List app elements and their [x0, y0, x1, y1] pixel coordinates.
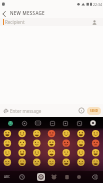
button[interactable] [43, 129, 58, 138]
button[interactable]: Recipient [0, 18, 103, 26]
button[interactable] [92, 20, 97, 25]
button[interactable] [6, 119, 14, 127]
button[interactable] [28, 138, 43, 147]
staticText: ABC [4, 175, 10, 179]
button[interactable] [14, 147, 28, 157]
button[interactable] [3, 108, 9, 114]
button[interactable]: NEW MESSAGE [0, 8, 103, 18]
staticText: Recipient [5, 19, 25, 25]
button[interactable] [62, 172, 72, 182]
button[interactable] [58, 157, 73, 167]
button[interactable]: Enter message [10, 108, 78, 114]
button[interactable] [88, 138, 103, 147]
button[interactable] [43, 138, 58, 147]
button[interactable] [61, 119, 69, 127]
button[interactable] [37, 173, 45, 181]
button[interactable]: SEND [87, 107, 101, 115]
button[interactable] [28, 147, 43, 157]
button[interactable] [73, 129, 88, 138]
button[interactable] [17, 172, 27, 182]
button[interactable] [0, 138, 14, 147]
button[interactable] [34, 119, 42, 127]
button[interactable] [58, 138, 73, 147]
button[interactable] [0, 147, 14, 157]
button[interactable] [58, 147, 73, 157]
staticText: SEND [90, 109, 98, 113]
button[interactable] [43, 157, 58, 167]
button[interactable] [28, 157, 43, 167]
button[interactable] [48, 119, 56, 127]
button[interactable] [14, 138, 28, 147]
button[interactable] [20, 119, 28, 127]
staticText: NEW MESSAGE [10, 10, 45, 16]
button[interactable] [89, 172, 99, 182]
button[interactable] [88, 147, 103, 157]
button[interactable] [88, 129, 103, 138]
button[interactable] [28, 129, 43, 138]
button[interactable] [73, 157, 88, 167]
staticText: 22:34 [93, 2, 102, 7]
button[interactable] [78, 107, 85, 114]
button[interactable] [14, 129, 28, 138]
button[interactable] [0, 129, 14, 138]
button[interactable] [73, 147, 88, 157]
button[interactable] [75, 119, 83, 127]
button[interactable] [0, 157, 14, 167]
button[interactable] [43, 147, 58, 157]
button[interactable] [49, 172, 59, 182]
button[interactable] [58, 129, 73, 138]
button[interactable] [74, 172, 84, 182]
button[interactable] [0, 9, 8, 17]
button[interactable] [88, 157, 103, 167]
button[interactable]: ABC [2, 172, 12, 182]
button[interactable] [14, 157, 28, 167]
button[interactable] [73, 138, 88, 147]
button[interactable] [89, 119, 97, 127]
